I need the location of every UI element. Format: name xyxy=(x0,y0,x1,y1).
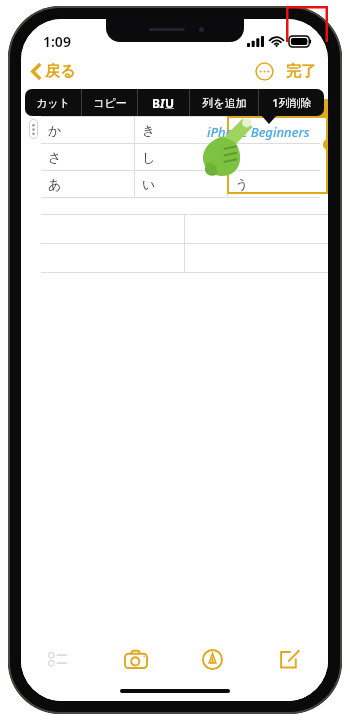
button[interactable]: し xyxy=(135,144,227,170)
button[interactable]: 戻る xyxy=(29,60,79,83)
staticText: I xyxy=(160,95,165,111)
button[interactable]: Row handle xyxy=(29,119,38,139)
staticText: B xyxy=(152,95,160,111)
staticText: 列を追加 xyxy=(202,96,247,110)
staticText: か xyxy=(48,122,62,138)
staticText: 1列削除 xyxy=(272,95,312,110)
staticText: 1:09 xyxy=(43,32,71,51)
button[interactable]: Checklist xyxy=(21,639,97,679)
button[interactable]: B xyxy=(138,95,189,111)
staticText: 戻る xyxy=(45,62,76,81)
staticText: う xyxy=(235,176,249,192)
button[interactable]: さ xyxy=(41,144,134,170)
button[interactable]: Camera xyxy=(97,639,174,679)
button[interactable]: あ xyxy=(41,171,134,197)
button[interactable]: か xyxy=(41,117,134,143)
button[interactable]: Draw xyxy=(174,639,251,679)
staticText: い xyxy=(142,176,156,192)
button[interactable]: Selected column xyxy=(227,99,328,194)
staticText: さ xyxy=(48,149,62,165)
button[interactable]: More options xyxy=(255,62,274,81)
button[interactable]: き xyxy=(135,117,227,143)
button[interactable]: New note xyxy=(251,639,328,679)
button[interactable]: 完了 xyxy=(284,60,318,83)
staticText: コピー xyxy=(93,96,127,110)
staticText: U xyxy=(165,95,175,111)
staticText: iPhone Beginners xyxy=(207,123,310,141)
button[interactable]: カット xyxy=(25,96,81,110)
button[interactable]: い xyxy=(135,171,227,197)
button[interactable] xyxy=(228,144,320,170)
staticText: カット xyxy=(36,96,70,110)
staticText: あ xyxy=(48,176,62,192)
button[interactable] xyxy=(228,117,320,143)
button[interactable]: 列を追加 xyxy=(190,96,258,110)
staticText: し xyxy=(142,149,156,165)
staticText: 完了 xyxy=(286,62,316,81)
staticText: き xyxy=(142,122,156,138)
button[interactable]: う xyxy=(228,171,320,197)
button[interactable]: コピー xyxy=(82,96,137,110)
button[interactable]: 1列削除 xyxy=(259,95,324,110)
